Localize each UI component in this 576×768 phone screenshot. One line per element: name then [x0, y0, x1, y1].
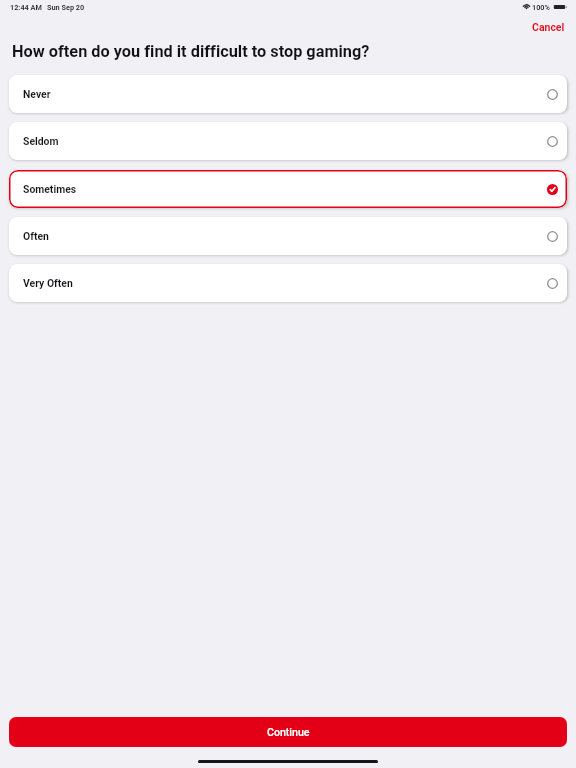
- other: Sometimes selected: [547, 184, 558, 195]
- staticText: Often: [23, 230, 49, 242]
- button[interactable]: Often: [9, 217, 567, 255]
- button[interactable]: Cancel: [520, 13, 576, 41]
- staticText: Sometimes: [23, 183, 77, 195]
- staticText: How often do you find it difficult to st…: [12, 42, 370, 61]
- staticText: Never: [23, 88, 51, 100]
- other: Select Very Often: [547, 278, 558, 289]
- other: Select Seldom: [547, 136, 558, 147]
- staticText: 12:44 AM: [10, 3, 42, 12]
- button[interactable]: Very Often: [9, 264, 567, 302]
- button[interactable]: Never: [9, 75, 567, 113]
- other: Select Often: [547, 231, 558, 242]
- staticText: Sun Sep 20: [47, 3, 85, 12]
- button[interactable]: Sometimes: [9, 170, 567, 208]
- staticText: 100%: [532, 3, 550, 12]
- button[interactable]: Seldom: [9, 122, 567, 160]
- staticText: Continue: [267, 726, 310, 738]
- staticText: Cancel: [532, 21, 565, 33]
- button[interactable]: Continue: [9, 717, 567, 747]
- staticText: Very Often: [23, 277, 73, 289]
- staticText: Seldom: [23, 135, 59, 147]
- other: Select Never: [547, 89, 558, 100]
